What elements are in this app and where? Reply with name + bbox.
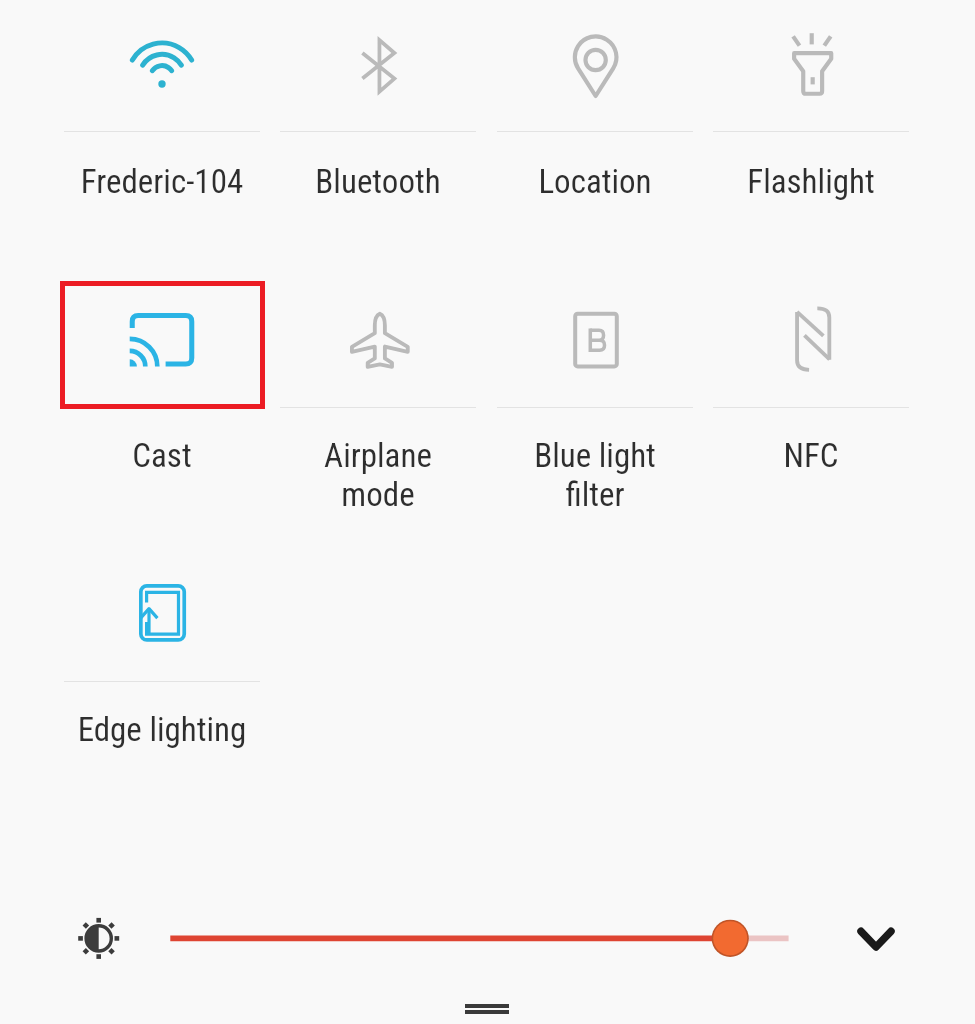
- staticText: Blue light filter: [493, 436, 697, 514]
- staticText: Flashlight: [709, 162, 913, 201]
- button[interactable]: Bluetooth: [276, 2, 480, 192]
- button[interactable]: Blue light filter: [493, 278, 697, 468]
- staticText: Frederic-104: [60, 162, 264, 201]
- button[interactable]: Cast: [60, 278, 264, 468]
- button[interactable]: Frederic-104: [60, 2, 264, 192]
- button[interactable]: Location: [493, 2, 697, 192]
- staticText: Bluetooth: [276, 162, 480, 201]
- staticText: Edge lighting: [60, 710, 264, 749]
- button[interactable]: Brightness: [60, 900, 140, 978]
- button[interactable]: Expand: [836, 900, 916, 978]
- staticText: NFC: [709, 436, 913, 475]
- button[interactable]: Brightness slider: [160, 905, 800, 971]
- staticText: Airplane mode: [276, 436, 480, 514]
- button[interactable]: Edge lighting: [60, 552, 264, 742]
- staticText: Location: [493, 162, 697, 201]
- staticText: Cast: [60, 436, 264, 475]
- button[interactable]: Flashlight: [709, 2, 913, 192]
- button[interactable]: Airplane mode: [276, 278, 480, 468]
- button[interactable]: NFC: [709, 278, 913, 468]
